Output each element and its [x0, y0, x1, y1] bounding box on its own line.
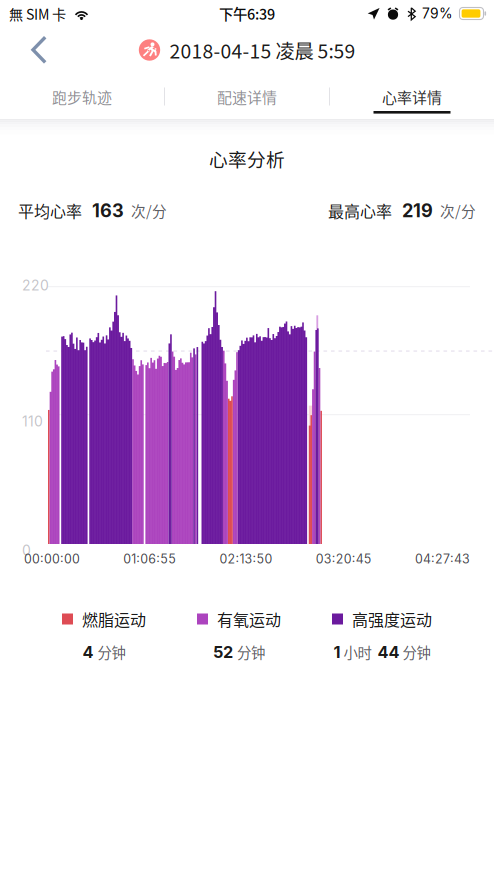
staticText: 跑步轨迹 — [52, 86, 112, 108]
staticText: 有氧运动 — [217, 607, 281, 631]
staticText: 燃脂运动 — [82, 607, 146, 631]
staticText: 分钟 — [237, 642, 265, 662]
staticText: 小时 — [343, 642, 371, 662]
staticText: 219 — [402, 200, 433, 221]
staticText: 無 SIM 卡 — [9, 3, 66, 24]
staticText: 02:13:50 — [219, 551, 272, 566]
staticText: 79% — [422, 5, 453, 22]
staticText: 1 — [333, 642, 340, 662]
staticText: 03:20:45 — [316, 551, 372, 566]
staticText: 2018-04-15 凌晨 5:59 — [169, 36, 355, 64]
staticText: 高强度运动 — [352, 607, 432, 631]
staticText: 4 — [82, 642, 93, 662]
staticText: 下午6:39 — [219, 3, 275, 24]
staticText: 00:00:00 — [24, 551, 80, 566]
staticText: 次/分 — [131, 200, 167, 221]
staticText: 心率分析 — [209, 145, 285, 172]
staticText: 平均心率 — [18, 199, 82, 222]
staticText: 52 — [213, 642, 233, 662]
staticText: 配速详情 — [217, 86, 277, 108]
staticText: 220 — [22, 277, 49, 294]
staticText: 01:06:55 — [123, 551, 176, 566]
staticText: 0 — [22, 542, 31, 559]
button[interactable]: 返回 — [0, 27, 62, 72]
staticText: 110 — [22, 413, 43, 430]
staticText: 分钟 — [402, 642, 430, 662]
staticText: 分钟 — [97, 642, 125, 662]
button[interactable]: 心率详情 — [330, 73, 494, 120]
staticText: 163 — [92, 200, 124, 221]
staticText: 心率详情 — [382, 86, 442, 108]
staticText: 04:27:43 — [415, 551, 470, 566]
staticText: 44 — [377, 642, 399, 662]
button[interactable]: 跑步轨迹 — [0, 73, 164, 120]
staticText: 最高心率 — [328, 199, 392, 222]
staticText: 次/分 — [440, 200, 476, 221]
button[interactable]: 配速详情 — [165, 73, 329, 120]
